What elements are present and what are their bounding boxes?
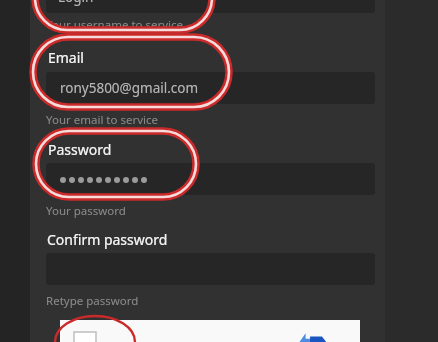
staticText: Your email to service xyxy=(46,112,159,128)
staticText: rony5800@gmail.com xyxy=(60,79,199,97)
staticText: Your username to service xyxy=(46,17,184,33)
staticText: Email xyxy=(48,48,84,67)
button[interactable] xyxy=(46,163,375,195)
staticText: Login xyxy=(58,0,94,6)
staticText: Retype password xyxy=(46,293,139,309)
button[interactable]: I'm not a robot reCAPTCHA xyxy=(60,320,360,342)
staticText: Your password xyxy=(46,203,126,219)
button[interactable]: rony5800@gmail.com xyxy=(46,72,375,104)
staticText: Confirm password xyxy=(47,230,168,249)
button[interactable]: Login xyxy=(46,0,375,13)
staticText: Password xyxy=(48,140,112,159)
